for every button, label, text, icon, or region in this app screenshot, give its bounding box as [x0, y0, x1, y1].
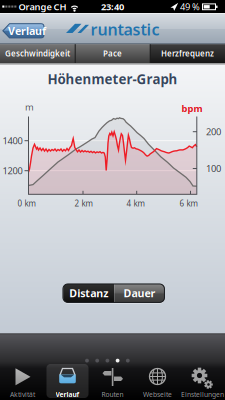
staticText: 1400 [2, 134, 22, 147]
staticText: 49 % [180, 0, 200, 13]
staticText: Dauer [123, 286, 155, 300]
button[interactable]: Verlauf [45, 362, 90, 400]
staticText: Pace [103, 48, 122, 59]
staticText: 0 km [17, 198, 35, 209]
staticText: Geschwindigkeit [5, 48, 70, 59]
staticText: Routen [101, 390, 123, 399]
staticText: Höhenmeter-Graph [47, 70, 177, 88]
staticText: Verlauf [8, 24, 46, 38]
staticText: 200 [206, 125, 221, 138]
staticText: 1200 [2, 164, 22, 177]
button[interactable]: Einstellungen [180, 362, 225, 400]
staticText: 2 km [74, 198, 92, 209]
button[interactable]: Aktivität [0, 362, 45, 400]
staticText: Distanz [69, 286, 108, 300]
staticText: 4 km [126, 198, 144, 209]
button[interactable]: Distanz [63, 284, 114, 302]
button[interactable]: Routen [90, 362, 135, 400]
button[interactable]: Back [2, 23, 44, 38]
staticText: 23:40 [101, 0, 124, 13]
staticText: Einstellungen [181, 390, 224, 399]
staticText: m [25, 101, 34, 113]
button[interactable]: Webseite [135, 362, 180, 400]
button[interactable]: Dauer [114, 284, 165, 302]
staticText: Herzfrequenz [161, 48, 214, 59]
staticText: 100 [206, 162, 221, 175]
button[interactable]: Geschwindigkeit [0, 44, 74, 63]
staticText: Aktivität [10, 390, 35, 399]
staticText: bpm [181, 102, 202, 115]
staticText: 6 km [179, 198, 197, 209]
staticText: Webseite [143, 390, 172, 399]
button[interactable]: Pace [75, 44, 149, 63]
staticText: Orange CH [18, 0, 66, 13]
button[interactable]: Herzfrequenz [150, 44, 225, 63]
staticText: runtastic [90, 19, 159, 40]
staticText: Verlauf [55, 390, 79, 399]
